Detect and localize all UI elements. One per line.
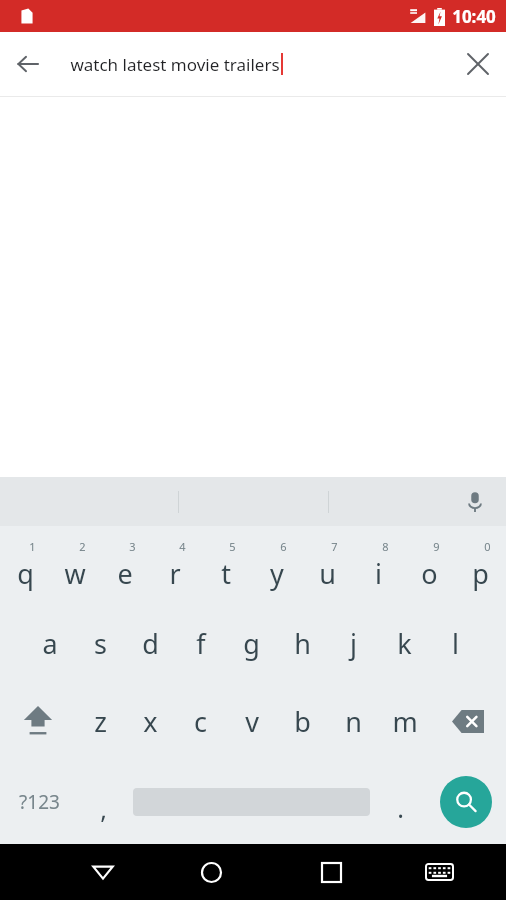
staticText: n: [345, 703, 362, 740]
staticText: k: [397, 625, 412, 662]
staticText: i: [375, 555, 382, 592]
staticText: 9: [433, 539, 440, 554]
button[interactable]: 3: [100, 526, 150, 604]
staticText: y: [270, 555, 284, 592]
staticText: 5: [229, 539, 236, 554]
button[interactable]: 2: [50, 526, 100, 604]
button[interactable]: ?123: [0, 760, 78, 844]
staticText: b: [294, 703, 311, 740]
staticText: q: [17, 555, 34, 592]
button[interactable]: Backspace: [430, 682, 506, 760]
button[interactable]: l: [430, 604, 481, 682]
staticText: l: [452, 625, 459, 662]
button[interactable]: Home: [151, 844, 271, 900]
button[interactable]: ,: [78, 760, 128, 844]
staticText: r: [169, 555, 181, 592]
button[interactable]: x: [125, 682, 175, 760]
staticText: ?123: [19, 789, 60, 815]
button[interactable]: v: [226, 682, 277, 760]
staticText: f: [196, 625, 206, 662]
staticText: j: [350, 625, 357, 662]
button[interactable]: Back: [0, 36, 56, 92]
staticText: .: [397, 791, 404, 825]
button[interactable]: s: [75, 604, 125, 682]
button[interactable]: 8: [353, 526, 404, 604]
button[interactable]: Shift: [0, 682, 75, 760]
staticText: m: [392, 703, 418, 740]
staticText: 2: [79, 539, 86, 554]
staticText: 8: [382, 539, 389, 554]
button[interactable]: z: [75, 682, 125, 760]
button[interactable]: .: [375, 760, 425, 844]
button[interactable]: h: [277, 604, 328, 682]
button[interactable]: a: [25, 604, 75, 682]
button[interactable]: Clear: [450, 36, 506, 92]
staticText: 1: [29, 539, 36, 554]
staticText: 7: [331, 539, 338, 554]
staticText: t: [221, 555, 231, 592]
button[interactable]: m: [379, 682, 430, 760]
button[interactable]: 4: [150, 526, 200, 604]
button[interactable]: Recent apps: [271, 844, 391, 900]
button[interactable]: c: [175, 682, 226, 760]
staticText: 4: [179, 539, 186, 554]
button[interactable]: watch latest movie trailers: [56, 32, 450, 96]
staticText: p: [472, 555, 489, 592]
button[interactable]: f: [175, 604, 226, 682]
button[interactable]: Switch keyboard: [391, 844, 487, 900]
button[interactable]: 9: [404, 526, 455, 604]
staticText: x: [143, 703, 158, 740]
staticText: g: [243, 625, 260, 662]
staticText: 10:40: [452, 5, 496, 28]
staticText: ,: [100, 792, 107, 826]
button[interactable]: 5: [200, 526, 251, 604]
staticText: h: [294, 625, 311, 662]
button[interactable]: 1: [0, 526, 50, 604]
button[interactable]: 7: [302, 526, 353, 604]
staticText: s: [94, 625, 107, 662]
button[interactable]: b: [277, 682, 328, 760]
staticText: o: [421, 555, 438, 592]
button[interactable]: k: [379, 604, 430, 682]
staticText: v: [245, 703, 259, 740]
button[interactable]: g: [226, 604, 277, 682]
staticText: watch latest movie trailers: [70, 53, 280, 76]
button[interactable]: 0: [455, 526, 506, 604]
button[interactable]: Search: [425, 760, 506, 844]
staticText: 6: [280, 539, 287, 554]
button[interactable]: 6: [251, 526, 302, 604]
button[interactable]: j: [328, 604, 379, 682]
staticText: 3: [129, 539, 136, 554]
staticText: z: [94, 703, 107, 740]
staticText: c: [194, 703, 207, 740]
button[interactable]: n: [328, 682, 379, 760]
staticText: e: [117, 555, 133, 592]
staticText: 0: [484, 539, 491, 554]
staticText: d: [142, 625, 159, 662]
staticText: a: [42, 625, 58, 662]
staticText: u: [319, 555, 336, 592]
button[interactable]: Voice input: [458, 485, 492, 519]
button[interactable]: d: [125, 604, 175, 682]
staticText: w: [64, 555, 86, 592]
button[interactable]: Hide keyboard: [54, 844, 151, 900]
button[interactable]: Space: [128, 760, 375, 844]
